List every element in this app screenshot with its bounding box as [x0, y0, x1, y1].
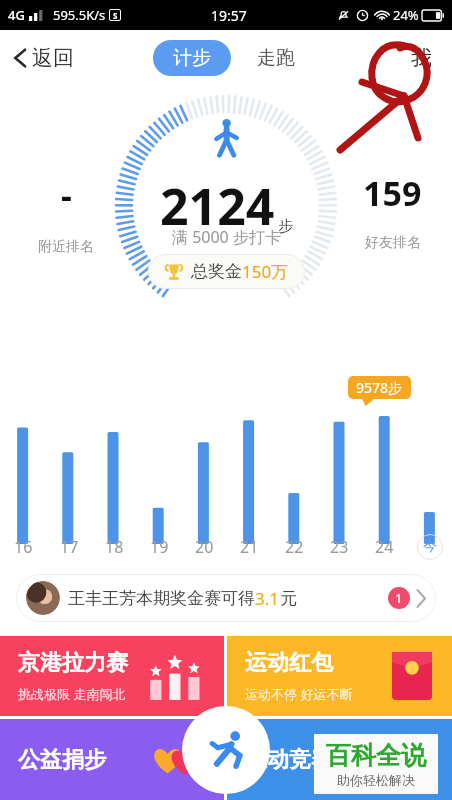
staticText: 24 — [375, 536, 394, 558]
staticText: 21 — [240, 536, 259, 558]
staticText: 挑战极限 走南闯北 — [18, 685, 126, 703]
button[interactable]: Start running — [182, 706, 270, 794]
button[interactable]: 我 — [405, 39, 438, 77]
staticText: 百科全说 — [326, 740, 426, 771]
staticText: - — [61, 172, 72, 218]
staticText: 595.5K/s — [53, 6, 106, 24]
button[interactable]: 今 — [417, 534, 443, 560]
button[interactable]: 走跑 — [253, 40, 299, 76]
staticText: 助你轻松解决 — [337, 772, 415, 788]
staticText: 20 — [195, 536, 214, 558]
staticText: 运动竞赛 — [245, 746, 333, 774]
staticText: 16 — [14, 536, 33, 558]
staticText: 王丰王芳本期奖金赛可得 — [68, 588, 255, 609]
staticText: 好友排名 — [365, 234, 421, 252]
staticText: 公益捐步 — [18, 746, 106, 774]
staticText: 9578步 — [356, 378, 403, 397]
staticText: 返回 — [32, 45, 74, 71]
button[interactable]: 计步 — [153, 40, 231, 76]
button[interactable]: 运动竞赛 — [227, 719, 452, 800]
staticText: 23 — [330, 536, 349, 558]
staticText: 19:57 — [211, 6, 247, 25]
staticText: 计步 — [173, 46, 211, 70]
staticText: 19 — [150, 536, 169, 558]
staticText: 3.1 — [255, 587, 280, 610]
staticText: 159 — [363, 170, 422, 216]
staticText: 我 — [411, 45, 432, 71]
staticText: 京港拉力赛 — [18, 649, 128, 677]
staticText: 步 — [278, 217, 293, 236]
button[interactable]: 公益捐步 — [0, 719, 224, 800]
button[interactable]: 总奖金 — [148, 254, 305, 289]
staticText: 附近排名 — [38, 238, 94, 256]
staticText: 24% — [393, 6, 419, 24]
staticText: 满 5000 步打卡 — [172, 226, 281, 248]
staticText: 今 — [423, 538, 437, 556]
staticText: 运动红包 — [245, 649, 333, 677]
staticText: 1 — [395, 589, 403, 607]
staticText: 走跑 — [257, 46, 295, 70]
staticText: 150万 — [242, 260, 289, 283]
staticText: 元 — [280, 588, 297, 609]
button[interactable]: 运动红包 — [227, 636, 452, 716]
staticText: 运动不停 好运不断 — [245, 685, 353, 703]
staticText: S — [113, 10, 118, 21]
button[interactable]: 王丰王芳本期奖金赛可得 — [16, 574, 436, 622]
staticText: 总奖金 — [191, 261, 242, 282]
staticText: 2124 — [160, 172, 275, 240]
button[interactable]: 返回 — [10, 39, 78, 77]
staticText: 17 — [60, 536, 79, 558]
staticText: 18 — [105, 536, 124, 558]
staticText: 22 — [285, 536, 304, 558]
staticText: 4G — [8, 6, 25, 24]
button[interactable]: 京港拉力赛 — [0, 636, 224, 716]
